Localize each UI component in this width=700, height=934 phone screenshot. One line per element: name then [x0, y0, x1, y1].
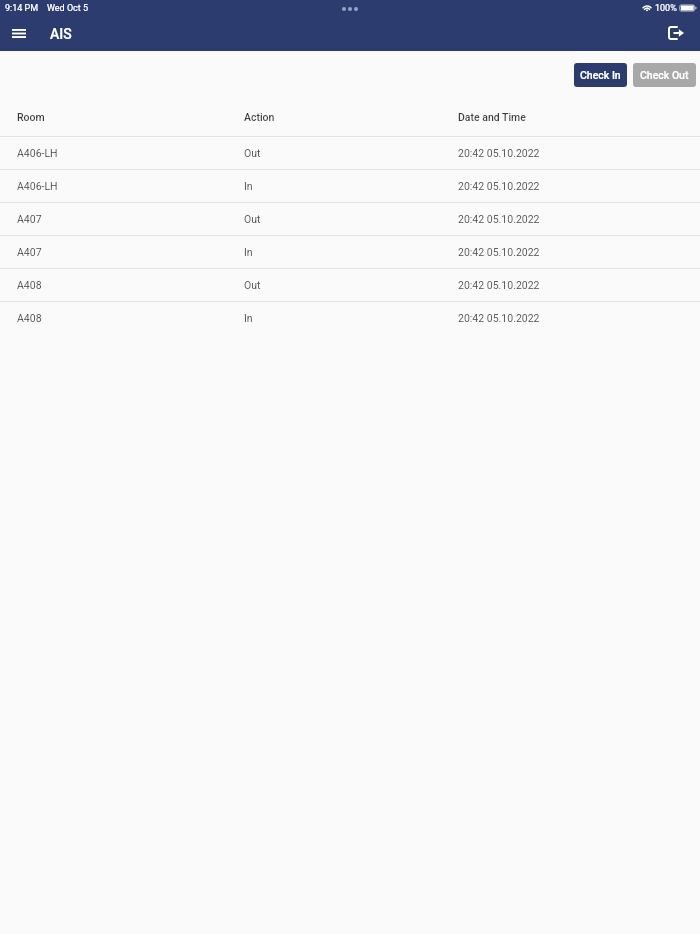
staticText: 20:42 05.10.2022 — [458, 147, 540, 159]
staticText: 20:42 05.10.2022 — [458, 180, 540, 192]
button[interactable]: A408 — [0, 302, 700, 334]
staticText: 20:42 05.10.2022 — [458, 246, 540, 258]
staticText: In — [244, 312, 253, 324]
staticText: In — [244, 180, 253, 192]
button[interactable]: A407 — [0, 203, 700, 235]
staticText: 20:42 05.10.2022 — [458, 312, 540, 324]
staticText: AIS — [50, 26, 72, 42]
staticText: A408 — [17, 312, 42, 324]
staticText: A408 — [17, 279, 42, 291]
staticText: A406-LH — [17, 147, 58, 159]
button[interactable]: Check Out — [633, 63, 696, 87]
staticText: 9:14 PM — [5, 3, 39, 14]
staticText: 20:42 05.10.2022 — [458, 279, 540, 291]
staticText: 20:42 05.10.2022 — [458, 213, 540, 225]
button[interactable]: Open navigation menu — [5, 20, 32, 47]
staticText: Check In — [580, 69, 621, 81]
staticText: In — [244, 246, 253, 258]
staticText: Out — [244, 279, 261, 291]
staticText: Action — [244, 111, 275, 123]
button[interactable]: Log out — [662, 19, 690, 47]
button[interactable]: A407 — [0, 236, 700, 268]
button[interactable]: A406-LH — [0, 137, 700, 169]
staticText: A407 — [17, 213, 42, 225]
staticText: Date and Time — [458, 111, 526, 123]
staticText: Out — [244, 213, 261, 225]
staticText: Wed Oct 5 — [47, 3, 89, 14]
staticText: 100% — [655, 3, 677, 14]
button[interactable]: Check In — [574, 63, 627, 87]
staticText: Room — [17, 111, 45, 123]
staticText: A406-LH — [17, 180, 58, 192]
button[interactable]: A406-LH — [0, 170, 700, 202]
staticText: Check Out — [640, 69, 689, 81]
button[interactable]: A408 — [0, 269, 700, 301]
staticText: Out — [244, 147, 261, 159]
staticText: A407 — [17, 246, 42, 258]
